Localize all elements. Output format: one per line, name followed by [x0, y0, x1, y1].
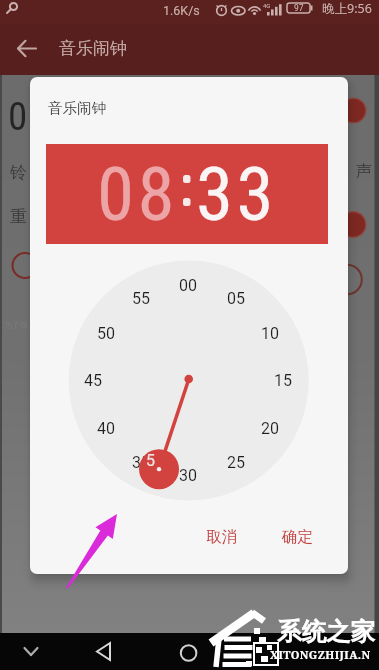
staticText: 系统之家	[277, 616, 375, 647]
staticText: 08	[97, 150, 179, 238]
button[interactable]: 确定	[30, 77, 92, 109]
staticText: 20	[261, 419, 279, 438]
staticText: 音乐闹钟	[59, 38, 127, 59]
staticText: 音乐闹钟	[48, 99, 106, 117]
staticText: 25	[227, 453, 245, 472]
staticText: 35	[132, 453, 150, 472]
staticText: 确定	[282, 527, 313, 547]
staticText: 05	[227, 289, 245, 308]
staticText: 40	[97, 419, 115, 438]
staticText: 45	[84, 371, 102, 390]
staticText: 1.6K/s	[163, 3, 200, 18]
staticText: 10	[261, 324, 279, 343]
staticText: 铃	[10, 162, 27, 183]
staticText: 33	[196, 150, 278, 238]
staticText: 97	[294, 3, 304, 13]
staticText: 00	[179, 276, 197, 295]
button[interactable]	[17, 39, 37, 58]
staticText: 重	[10, 206, 27, 227]
button[interactable]	[90, 637, 120, 667]
staticText: 50	[97, 324, 115, 343]
button[interactable]: 取消	[30, 77, 92, 109]
staticText: 0	[8, 94, 28, 130]
staticText: 15	[274, 371, 292, 390]
staticText: 55	[132, 289, 150, 308]
button[interactable]	[174, 637, 204, 667]
staticText: 5	[146, 451, 155, 470]
staticText: XITONGZHIJIA.NET	[270, 647, 376, 663]
staticText: 声	[356, 161, 372, 181]
staticText: 晚上9:56	[322, 0, 372, 16]
staticText: 30	[179, 466, 197, 485]
staticText: 4G	[263, 2, 271, 9]
staticText: 取消	[206, 527, 237, 547]
